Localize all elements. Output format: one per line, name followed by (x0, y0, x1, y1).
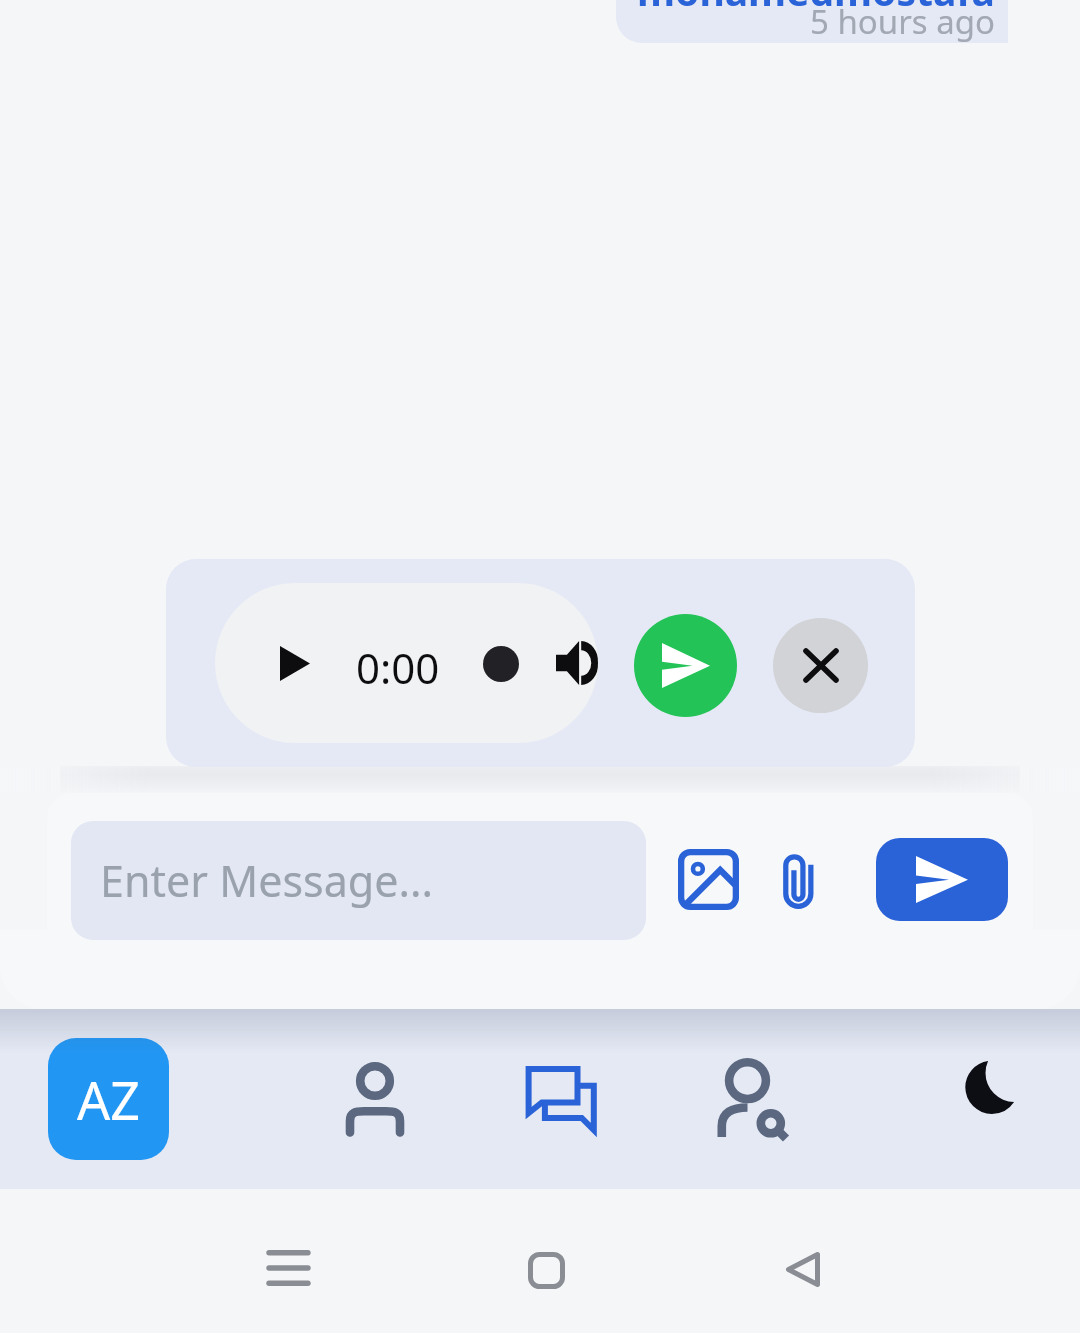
button[interactable]: Audio player (215, 583, 598, 743)
button[interactable]: Find people (692, 1039, 812, 1159)
staticText: Enter Message... (100, 851, 434, 910)
button[interactable]: AZ (48, 1038, 169, 1160)
staticText: AZ (77, 1064, 140, 1135)
button[interactable]: Back (753, 1219, 853, 1319)
button[interactable]: mohamedmostafa (616, 0, 1008, 43)
button[interactable]: Send message (876, 838, 1008, 921)
button[interactable]: Attach image (666, 837, 751, 922)
button[interactable]: Cancel recording (773, 618, 868, 713)
staticText: mohamedmostafa (637, 0, 995, 17)
button[interactable]: Dark mode (930, 1028, 1050, 1148)
button[interactable]: Enter Message... (71, 821, 646, 940)
button[interactable]: Attach file (755, 837, 840, 922)
staticText: 0:00 (356, 639, 440, 696)
staticText: 5 hours ago (616, 0, 995, 43)
button[interactable]: Home (496, 1220, 596, 1320)
button[interactable]: Profile (315, 1039, 435, 1159)
button[interactable]: Send voice message (634, 614, 737, 717)
button[interactable]: Recent apps (238, 1218, 338, 1318)
button[interactable]: Chats (501, 1041, 621, 1161)
